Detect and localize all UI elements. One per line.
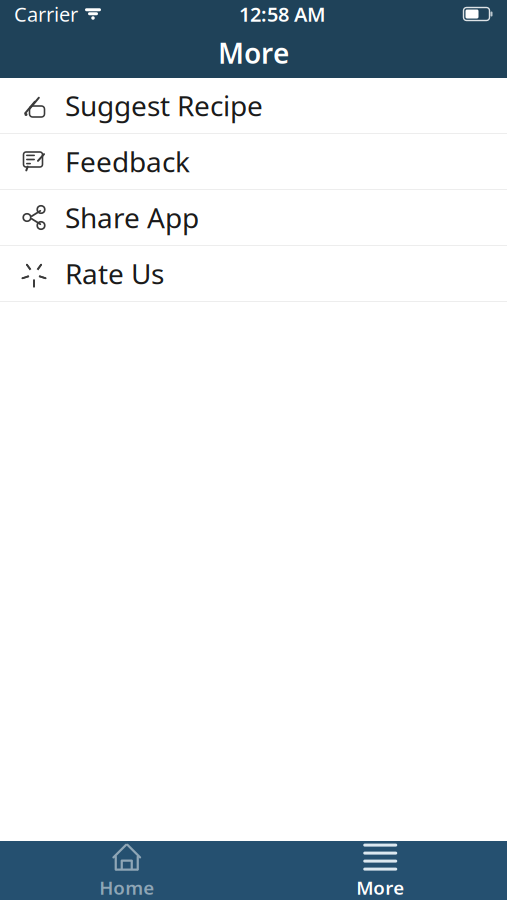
staticText: Share App <box>65 199 199 236</box>
button[interactable]: More <box>320 841 440 900</box>
button[interactable]: Rate Us <box>0 246 507 302</box>
staticText: Feedback <box>65 143 190 180</box>
staticText: More <box>218 34 289 72</box>
staticText: More <box>356 875 404 900</box>
staticText: Suggest Recipe <box>65 87 263 124</box>
staticText: Home <box>99 875 154 900</box>
staticText: Rate Us <box>65 255 164 292</box>
staticText: Carrier <box>14 1 78 27</box>
button[interactable]: Share App <box>0 190 507 246</box>
button[interactable]: Feedback <box>0 134 507 190</box>
staticText: 12:58 AM <box>239 1 326 27</box>
button[interactable]: Home <box>67 841 187 900</box>
button[interactable]: Suggest Recipe <box>0 78 507 134</box>
